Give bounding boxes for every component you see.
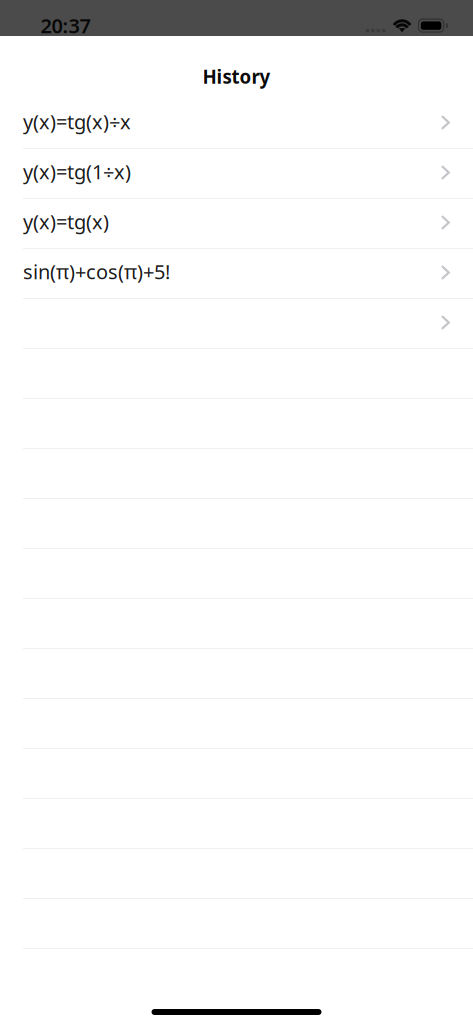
button[interactable]: y(x)=tg(x)÷x <box>0 99 473 149</box>
button[interactable]: sin(π)+cos(π)+5! <box>0 249 473 299</box>
staticText: sin(π)+cos(π)+5! <box>23 258 170 285</box>
button[interactable] <box>0 299 473 349</box>
staticText: y(x)=tg(1÷x) <box>23 158 131 185</box>
staticText: y(x)=tg(x) <box>23 208 109 235</box>
staticText: y(x)=tg(x)÷x <box>23 108 131 135</box>
button[interactable]: y(x)=tg(1÷x) <box>0 149 473 199</box>
staticText: 20:37 <box>40 12 90 39</box>
button[interactable]: y(x)=tg(x) <box>0 199 473 249</box>
staticText: History <box>202 64 270 89</box>
